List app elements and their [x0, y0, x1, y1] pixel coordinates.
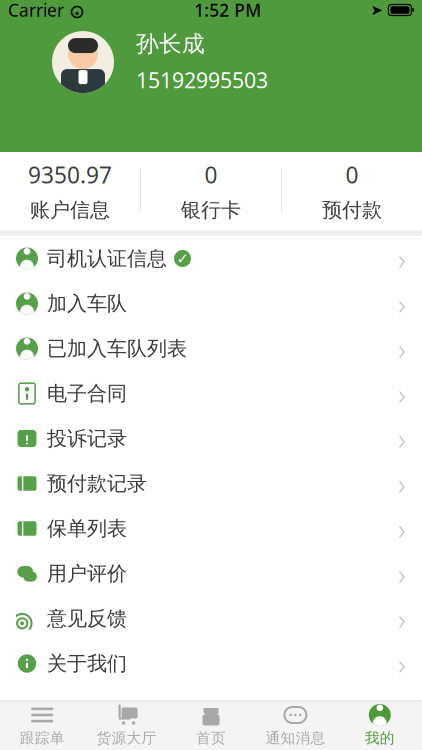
staticText: 0 [345, 160, 358, 190]
staticText: › [398, 374, 406, 413]
staticText: 加入车队 [47, 291, 127, 316]
button[interactable]: 我的 [338, 701, 422, 750]
staticText: 账户信息 [30, 198, 110, 222]
staticText: 9350.97 [28, 160, 112, 190]
staticText: › [398, 644, 406, 683]
button[interactable]: 货源大厅 [84, 701, 169, 750]
button[interactable]: 司机认证信息 [0, 236, 422, 281]
button[interactable]: 投诉记录 [0, 416, 422, 461]
button[interactable]: 通知消息 [253, 701, 338, 750]
staticText: 15192995503 [136, 66, 268, 94]
button[interactable]: 首页 [169, 701, 253, 750]
staticText: 首页 [196, 729, 226, 747]
staticText: › [398, 554, 406, 593]
button[interactable]: 已加入车队列表 [0, 326, 422, 371]
staticText: ✓ [176, 250, 188, 267]
staticText: › [398, 509, 406, 548]
staticText: › [398, 419, 406, 458]
staticText: 意见反馈 [47, 606, 127, 631]
staticText: 通知消息 [265, 729, 325, 747]
staticText: 跟踪单 [20, 729, 65, 747]
staticText: 已加入车队列表 [47, 336, 187, 361]
staticText: 预付款 [322, 198, 382, 222]
staticText: › [398, 464, 406, 503]
staticText: 用户评价 [47, 561, 127, 586]
staticText: 司机认证信息 [47, 246, 167, 271]
button[interactable]: 跟踪单 [0, 701, 84, 750]
staticText: 电子合同 [47, 381, 127, 406]
staticText: 保单列表 [47, 516, 127, 541]
staticText: ➤ [370, 2, 382, 18]
staticText: 预付款记录 [47, 471, 147, 496]
staticText: 投诉记录 [47, 426, 127, 451]
button[interactable]: 保单列表 [0, 506, 422, 551]
button[interactable]: 0 [141, 152, 281, 230]
staticText: 货源大厅 [97, 729, 157, 747]
button[interactable]: 关于我们 [0, 641, 422, 686]
staticText: › [398, 329, 406, 368]
staticText: 0 [204, 160, 217, 190]
staticText: Carrier [8, 0, 64, 21]
staticText: › [398, 284, 406, 323]
button[interactable]: 9350.97 [0, 152, 140, 230]
staticText: › [398, 239, 406, 278]
staticText: 银行卡 [181, 198, 241, 222]
button[interactable]: 用户评价 [0, 551, 422, 596]
staticText: 关于我们 [47, 651, 127, 676]
button[interactable]: 意见反馈 [0, 596, 422, 641]
button[interactable]: 0 [282, 152, 422, 230]
button[interactable]: 电子合同 [0, 371, 422, 416]
button[interactable]: 加入车队 [0, 281, 422, 326]
staticText: 我的 [365, 729, 395, 747]
staticText: 1:52 PM [194, 0, 261, 21]
button[interactable]: 预付款记录 [0, 461, 422, 506]
staticText: 孙长成 [136, 30, 205, 58]
staticText: › [398, 599, 406, 638]
